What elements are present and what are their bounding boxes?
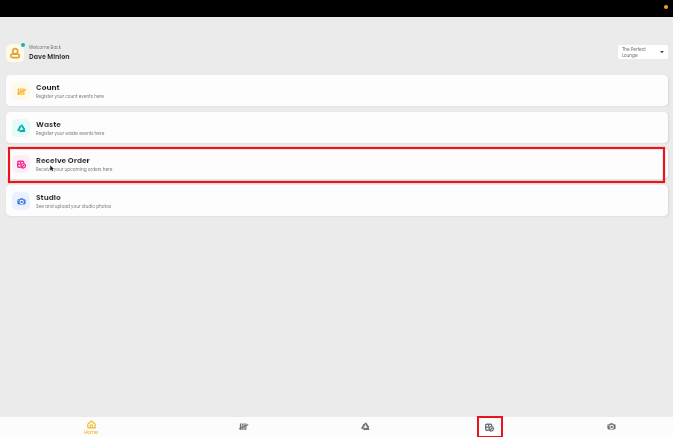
staticText: Count	[36, 82, 60, 92]
staticText: Receive Order	[36, 155, 90, 165]
staticText: Lounge	[622, 52, 638, 58]
button[interactable]: Waste	[6, 112, 668, 143]
button[interactable]: Profile	[6, 44, 24, 62]
button[interactable]: Count	[182, 417, 304, 437]
button[interactable]: Waste	[304, 417, 427, 437]
staticText: Dave Minion	[29, 52, 70, 61]
staticText: Studio	[36, 192, 61, 202]
staticText: Waste	[36, 119, 61, 129]
staticText: The Perfect	[622, 46, 646, 52]
button[interactable]: Studio	[550, 417, 673, 437]
button[interactable]: Count	[6, 75, 668, 106]
staticText: Receive your upcoming orders here	[36, 166, 113, 172]
button[interactable]: The Perfect	[618, 45, 668, 59]
staticText: See and upload your studio photos	[36, 203, 112, 209]
button[interactable]: Receive Order	[6, 148, 668, 179]
button[interactable]: Home	[0, 417, 182, 437]
button[interactable]: Receive Order	[478, 417, 502, 437]
staticText: Welcome Back	[29, 44, 61, 50]
button[interactable]: Studio	[6, 185, 668, 216]
staticText: Home	[84, 429, 98, 435]
staticText: Register your waste events here	[36, 130, 105, 136]
staticText: Register your count events here	[36, 93, 104, 99]
